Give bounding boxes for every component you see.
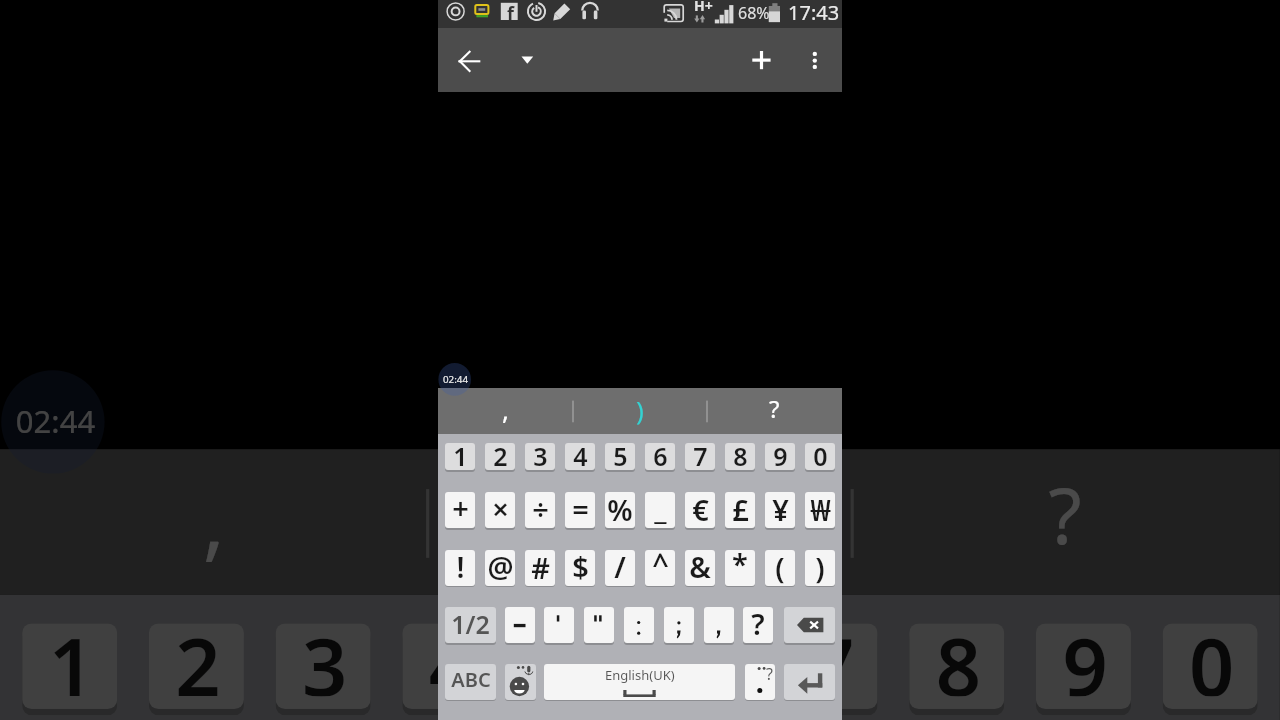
button[interactable]: ₩ [805,492,835,528]
button[interactable]: / [605,550,635,586]
button[interactable]: % [605,492,635,528]
staticText: = [572,492,589,525]
staticText: 6 [653,443,668,466]
staticText: € [692,492,709,526]
button[interactable]: Comma [704,607,734,643]
staticText: 4 [428,623,475,696]
button[interactable]: 5 [605,443,635,470]
staticText: 0 [813,443,828,466]
staticText: ₩ [810,492,831,526]
staticText: ( [775,550,785,584]
button[interactable]: 0 [805,443,835,470]
button[interactable]: Add [738,38,785,84]
button[interactable]: Emoji and voice input [505,664,536,700]
button[interactable]: 1 [22,623,117,709]
button[interactable]: ABC [445,664,496,700]
button[interactable]: _ [645,492,675,528]
staticText: 9 [1061,623,1109,696]
button[interactable]: 8 [909,623,1004,709]
button[interactable]: Show dropdown [504,38,550,84]
button[interactable]: ) [428,449,852,595]
button[interactable]: + [445,492,475,528]
button[interactable]: = [565,492,595,528]
staticText: # [531,550,550,584]
button[interactable]: 5 [529,623,624,709]
button[interactable]: ? [743,607,773,643]
staticText: f [507,1,514,26]
button[interactable]: Semicolon [664,607,694,643]
staticText: ? [766,664,773,685]
button[interactable]: ) [573,388,707,434]
staticText: ^ [652,550,669,580]
staticText: * [732,550,748,580]
staticText: £ [732,492,749,526]
button[interactable]: 0 [1163,623,1258,709]
button[interactable]: & [685,550,715,586]
button[interactable]: $ [565,550,595,586]
button[interactable]: 7 [782,623,877,709]
staticText: 6 [681,623,729,696]
staticText: 1 [47,623,95,696]
button[interactable]: ÷ [525,492,555,528]
button[interactable]: ? [707,388,842,434]
staticText: ) [636,392,644,427]
button[interactable]: # [525,550,555,586]
button[interactable]: 3 [525,443,555,470]
staticText: % [607,492,633,526]
button[interactable]: 2 [485,443,515,470]
button[interactable]: 9 [765,443,795,470]
button[interactable]: 3 [276,623,371,709]
staticText: ! [456,550,465,583]
staticText: @ [487,550,514,583]
button[interactable]: Space [544,664,735,700]
staticText: ¥ [772,492,789,526]
staticText: 1 [453,443,468,466]
staticText: 1/2 [451,607,490,641]
button[interactable]: 4 [565,443,595,470]
button[interactable]: Enter [784,664,835,700]
staticText: 2 [174,623,222,696]
button[interactable]: @ [485,550,515,586]
button[interactable]: * [725,550,755,586]
staticText: , [502,392,509,427]
button[interactable]: £ [725,492,755,528]
button[interactable]: 8 [725,443,755,470]
button[interactable]: 2 [149,623,244,709]
button[interactable]: Backspace [784,607,835,643]
staticText: $ [572,550,589,583]
staticText: ? [1049,462,1083,566]
button[interactable]: ¥ [765,492,795,528]
button[interactable]: 6 [656,623,751,709]
button[interactable]: ) [805,550,835,586]
button[interactable]: , [438,388,573,434]
staticText: 8 [935,623,982,696]
button[interactable]: 1 [445,443,475,470]
button[interactable]: Period [745,664,775,700]
staticText: H+ [694,0,713,15]
staticText: 2 [493,443,508,466]
staticText: 7 [693,443,708,466]
button[interactable]: Quote [584,607,614,643]
button[interactable]: ^ [645,550,675,586]
staticText: _ [654,492,667,524]
button[interactable]: × [485,492,515,528]
button[interactable]: ( [765,550,795,586]
button[interactable]: ? [852,449,1280,595]
button[interactable]: 4 [402,623,497,709]
button[interactable]: Colon [624,607,654,643]
button[interactable]: 1/2 [445,607,496,643]
staticText: 02:44 [443,373,469,386]
staticText: 17:43 [788,0,840,26]
button[interactable]: Back [445,38,494,84]
button[interactable]: Apostrophe [544,607,574,643]
button[interactable]: 6 [645,443,675,470]
button[interactable]: More options [794,38,836,84]
button[interactable]: € [685,492,715,528]
staticText: 3 [533,443,548,466]
button[interactable]: 9 [1036,623,1131,709]
button[interactable]: ! [445,550,475,586]
staticText: 4 [573,443,588,466]
button[interactable]: 7 [685,443,715,470]
button[interactable]: Minus [505,607,535,643]
